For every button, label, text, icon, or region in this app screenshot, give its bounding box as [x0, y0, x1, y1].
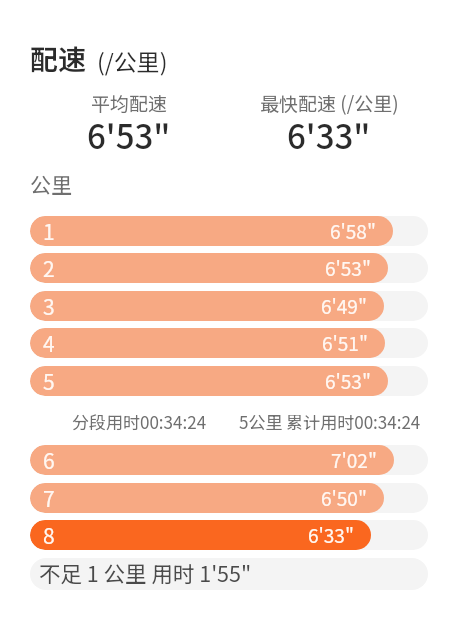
button[interactable]: 4: [30, 328, 428, 358]
staticText: (/公里): [97, 44, 168, 77]
staticText: 公里: [30, 169, 72, 199]
staticText: 6'33": [287, 111, 371, 159]
button[interactable]: 5: [30, 366, 428, 396]
staticText: 6'50": [321, 484, 367, 512]
staticText: 5: [43, 366, 55, 396]
button[interactable]: 1: [30, 216, 428, 246]
button[interactable]: 6: [30, 445, 428, 475]
staticText: 6'33": [308, 521, 354, 549]
staticText: 最快配速 (/公里): [260, 89, 399, 117]
staticText: 6'53": [325, 367, 371, 395]
staticText: 4: [43, 328, 55, 358]
staticText: 8: [43, 520, 55, 550]
button[interactable]: 不足 1 公里 用时 1'55": [30, 558, 428, 590]
staticText: 6'49": [321, 292, 367, 320]
staticText: 7: [43, 483, 55, 513]
button[interactable]: 2: [30, 253, 428, 283]
staticText: 5公里 累计用时00:34:24: [239, 409, 421, 434]
staticText: 不足 1 公里 用时 1'55": [39, 558, 252, 588]
staticText: 1: [43, 216, 55, 246]
staticText: 平均配速: [91, 89, 168, 117]
staticText: 分段用时00:34:24: [72, 409, 207, 434]
button[interactable]: 7: [30, 483, 428, 513]
staticText: 6'53": [325, 254, 371, 282]
staticText: 配速: [30, 38, 87, 79]
staticText: 6'58": [330, 217, 376, 245]
staticText: 2: [43, 253, 55, 283]
button[interactable]: 8: [30, 520, 428, 550]
staticText: 7'02": [331, 446, 377, 474]
staticText: 6: [43, 445, 55, 475]
button[interactable]: 3: [30, 291, 428, 321]
staticText: 3: [43, 291, 55, 321]
staticText: 6'51": [322, 329, 368, 357]
staticText: 6'53": [87, 111, 171, 159]
